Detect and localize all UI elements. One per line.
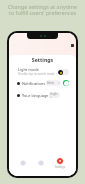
button[interactable]: Alerts (46, 80, 61, 86)
button[interactable]: Profile (71, 44, 74, 47)
staticText: English (50, 92, 59, 98)
button[interactable]: English (49, 92, 60, 98)
staticText: Double-tap to switch mode (18, 72, 55, 76)
staticText: Settings (55, 165, 65, 169)
button[interactable]: Notifications (17, 79, 69, 87)
button[interactable]: Settings (55, 158, 65, 169)
button[interactable]: Toggle light mode (58, 69, 69, 75)
staticText: Notifications (22, 81, 46, 86)
staticText: Alerts (47, 81, 55, 85)
button[interactable]: Light mode (18, 67, 69, 76)
staticText: Light mode (18, 67, 39, 72)
staticText: Change settings at anytime to fulfill us… (3, 3, 82, 17)
staticText: Your language (22, 93, 49, 98)
button[interactable]: Search (38, 160, 44, 166)
staticText: Settings (9, 56, 76, 63)
button[interactable]: Your language (17, 91, 69, 99)
button[interactable]: Toggle notifications (63, 80, 69, 86)
button[interactable]: Home (20, 160, 26, 166)
